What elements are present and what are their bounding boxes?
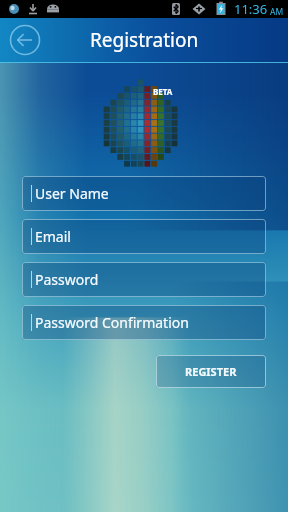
staticText: Password Confirmation [35, 313, 189, 332]
staticText: 11:36 [234, 0, 268, 18]
staticText: BETA [153, 86, 173, 97]
button[interactable]: Email [22, 219, 266, 254]
button[interactable]: REGISTER [156, 355, 266, 388]
staticText: REGISTER [185, 364, 237, 379]
button[interactable]: Password [22, 262, 266, 297]
button[interactable]: Back [8, 23, 42, 57]
staticText: Registration [90, 27, 199, 53]
staticText: Email [35, 227, 71, 246]
staticText: Password [35, 270, 99, 289]
staticText: AM [270, 6, 284, 18]
button[interactable]: Password Confirmation [22, 305, 266, 340]
button[interactable]: User Name [22, 176, 266, 211]
staticText: User Name [35, 184, 109, 203]
